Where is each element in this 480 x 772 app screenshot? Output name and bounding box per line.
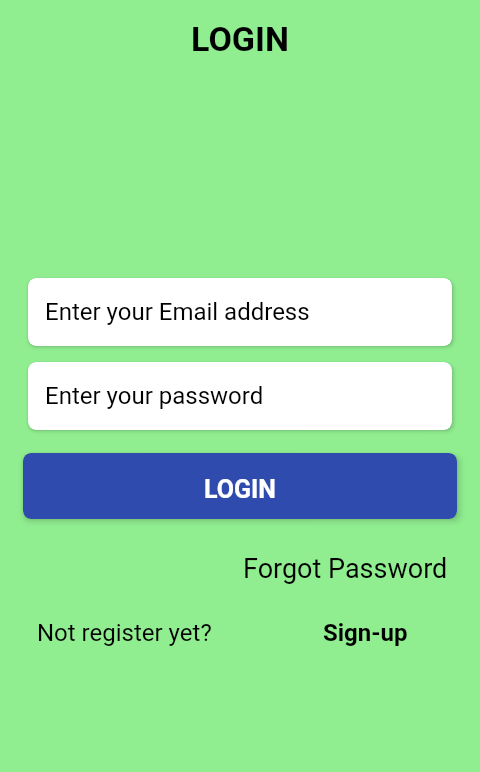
button[interactable]: Enter your password [28, 362, 452, 430]
staticText: LOGIN [0, 19, 480, 59]
staticText: Sign-up [323, 619, 408, 647]
staticText: Enter your Email address [45, 298, 310, 326]
staticText: Forgot Password [243, 553, 448, 585]
button[interactable]: Sign-up [323, 615, 408, 651]
staticText: Not register yet? [37, 619, 212, 647]
button[interactable]: Forgot Password [243, 545, 448, 593]
staticText: LOGIN [204, 475, 277, 504]
button[interactable]: LOGIN [23, 453, 457, 519]
button[interactable]: Enter your Email address [28, 278, 452, 346]
staticText: Enter your password [45, 382, 264, 410]
